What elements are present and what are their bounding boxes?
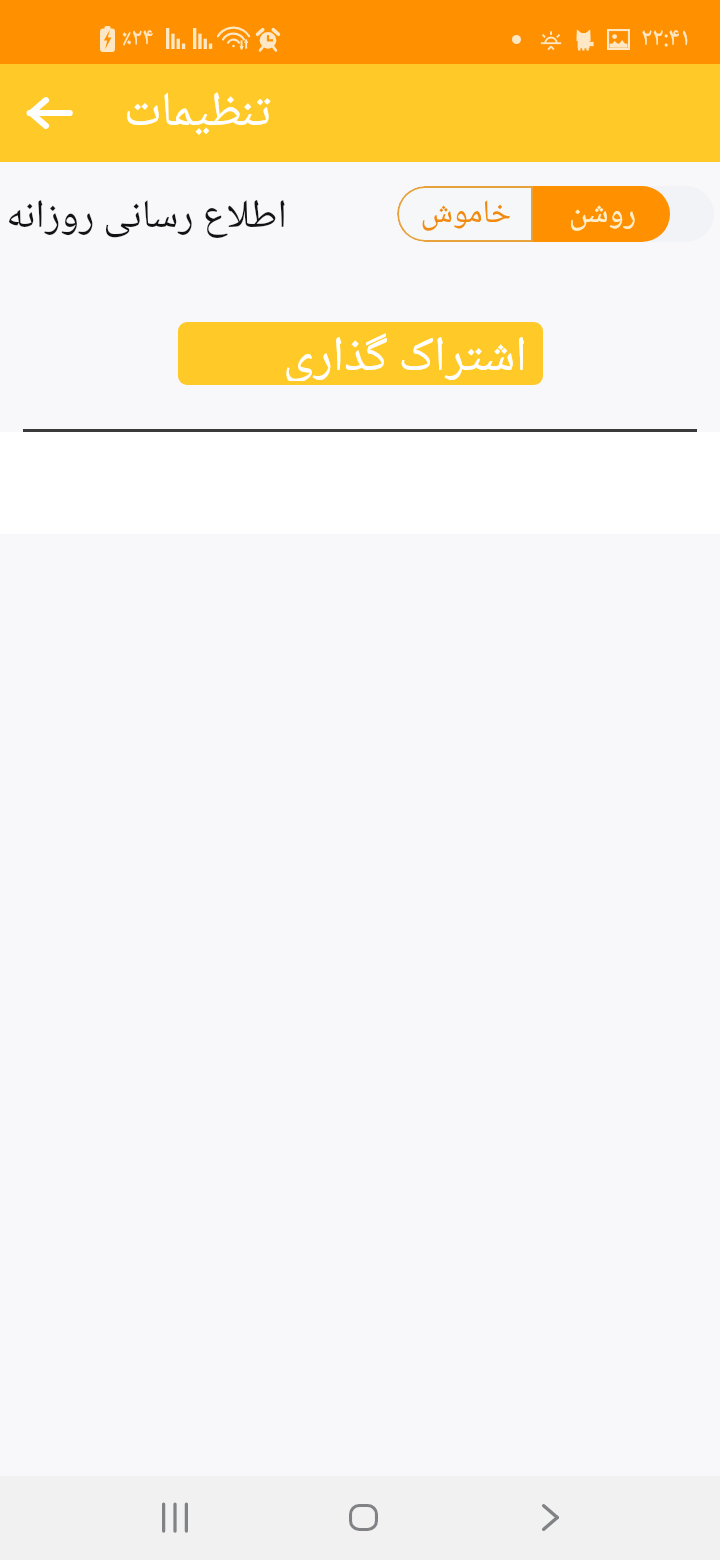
staticText: روشن [568,188,636,242]
button[interactable]: روشن [533,186,670,242]
staticText: اشتراک گذاری [283,322,527,381]
button[interactable]: Back [5,69,93,157]
staticText: تنظیمات [124,74,271,156]
button[interactable]: خاموش [397,186,533,242]
staticText: خاموش [420,188,511,242]
staticText: ٢٢:۴١ [641,18,692,61]
button[interactable]: Back [510,1477,590,1557]
button[interactable]: اشتراک گذاری [178,322,543,385]
button[interactable]: Recent apps [135,1477,215,1557]
button[interactable]: Home [323,1477,403,1557]
staticText: اطلاع رسانی روزانه [6,184,287,252]
staticText: ٪٢۴ [122,18,154,59]
